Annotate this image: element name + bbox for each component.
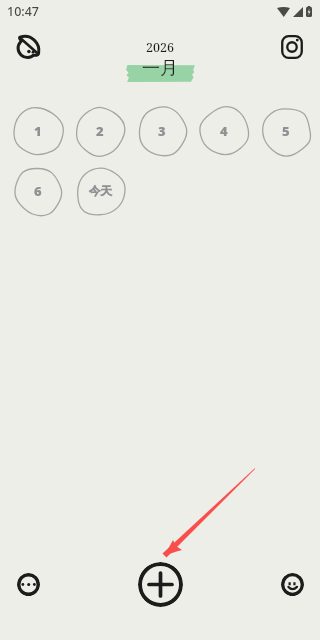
- staticText: 2: [96, 122, 104, 140]
- staticText: 5: [282, 122, 290, 140]
- button[interactable]: 3: [131, 101, 193, 161]
- button[interactable]: 今天: [69, 161, 131, 221]
- button[interactable]: 6: [7, 161, 69, 221]
- button[interactable]: Profile: [281, 573, 304, 596]
- button[interactable]: Lemon: [13, 31, 45, 63]
- staticText: 今天: [89, 184, 112, 198]
- button[interactable]: Camera: [276, 31, 308, 63]
- button[interactable]: 1: [7, 101, 69, 161]
- staticText: 6: [34, 182, 42, 200]
- staticText: 一月: [142, 57, 178, 80]
- button[interactable]: 5: [255, 101, 317, 161]
- staticText: 4: [220, 122, 228, 140]
- staticText: 3: [158, 122, 166, 140]
- button[interactable]: More options: [17, 573, 40, 596]
- staticText: 10:47: [7, 3, 40, 20]
- staticText: 1: [34, 122, 42, 140]
- staticText: 2026: [146, 39, 175, 56]
- button[interactable]: Add: [138, 562, 183, 607]
- button[interactable]: 2: [69, 101, 131, 161]
- button[interactable]: 4: [193, 101, 255, 161]
